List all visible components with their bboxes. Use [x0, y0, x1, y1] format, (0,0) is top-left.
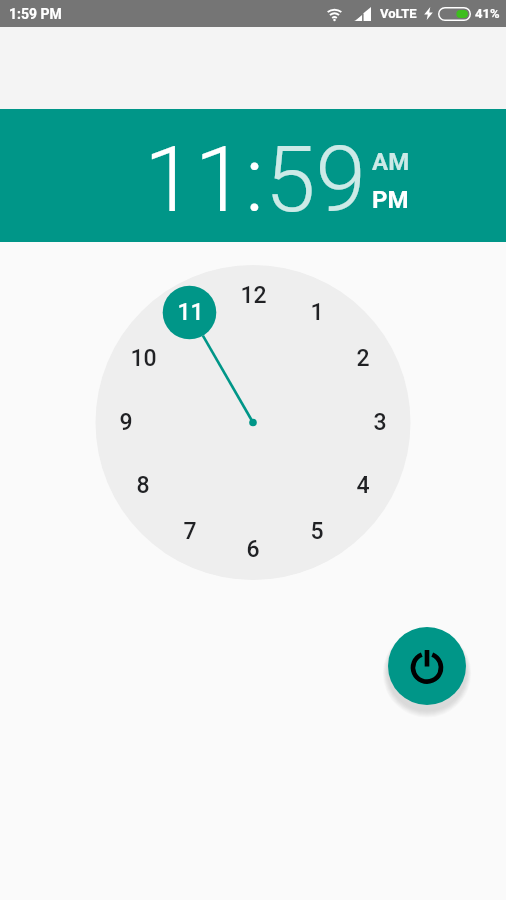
staticText: 2 [356, 345, 370, 372]
staticText: 8 [136, 472, 150, 499]
staticText: 10 [130, 345, 157, 372]
button[interactable]: 1 [295, 290, 339, 334]
staticText: 1:59 PM [9, 6, 62, 22]
staticText: 4 [356, 472, 370, 499]
button[interactable]: Power [388, 627, 466, 705]
staticText: 11 [177, 299, 204, 326]
button[interactable]: 4 [341, 463, 385, 507]
staticText: : [245, 127, 265, 234]
staticText: 41% [475, 6, 500, 21]
button[interactable]: 12 [231, 273, 275, 317]
button[interactable]: 6 [231, 527, 275, 571]
button[interactable]: 59 [265, 127, 366, 234]
button[interactable]: AM [372, 148, 410, 176]
button[interactable]: 5 [295, 509, 339, 553]
button[interactable]: 2 [341, 336, 385, 380]
staticText: 1 [310, 299, 324, 326]
button[interactable]: 10 [121, 336, 165, 380]
staticText: 7 [183, 518, 197, 545]
staticText: VoLTE [380, 6, 417, 21]
button[interactable]: 11 [168, 290, 212, 334]
staticText: 6 [246, 536, 260, 563]
button[interactable]: PM [372, 186, 409, 214]
button[interactable]: 8 [121, 463, 165, 507]
staticText: 3 [373, 409, 387, 436]
button[interactable]: 3 [358, 400, 402, 444]
staticText: 12 [240, 282, 267, 309]
button[interactable]: 9 [104, 400, 148, 444]
button[interactable]: 11 [144, 127, 245, 234]
staticText: 5 [310, 518, 324, 545]
staticText: 9 [119, 409, 133, 436]
button[interactable]: 7 [168, 509, 212, 553]
